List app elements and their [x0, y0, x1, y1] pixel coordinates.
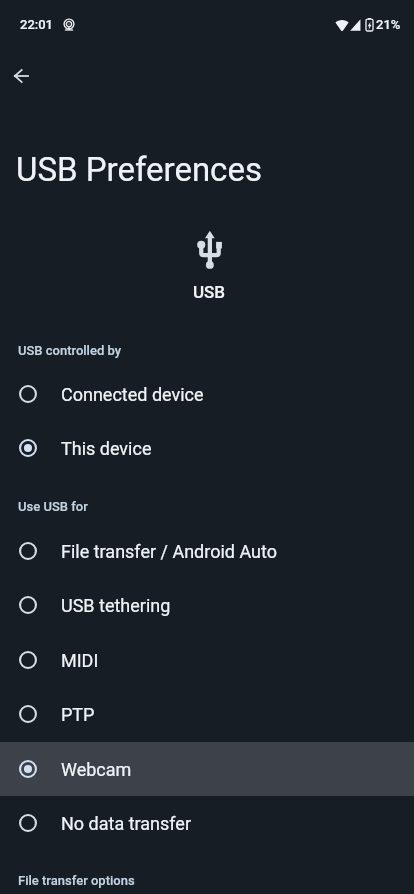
staticText: MIDI	[61, 650, 99, 671]
button[interactable]: USB tethering	[0, 578, 414, 632]
button[interactable]: MIDI	[0, 633, 414, 687]
staticText: Connected device	[61, 384, 204, 405]
staticText: File transfer options	[18, 873, 135, 888]
button[interactable]: No data transfer	[0, 796, 414, 850]
staticText: USB controlled by	[18, 343, 122, 358]
button[interactable]: Navigate up	[0, 55, 42, 97]
staticText: 21%	[376, 17, 401, 32]
staticText: PTP	[61, 704, 95, 725]
button[interactable]: This device	[0, 421, 414, 475]
staticText: USB	[193, 282, 226, 302]
staticText: Webcam	[61, 759, 132, 780]
staticText: USB Preferences	[16, 150, 262, 189]
button[interactable]: Webcam	[0, 742, 414, 796]
staticText: No data transfer	[61, 813, 192, 834]
staticText: 22:01	[20, 17, 54, 32]
staticText: USB tethering	[61, 595, 171, 616]
staticText: Use USB for	[18, 499, 88, 514]
staticText: This device	[61, 438, 152, 459]
button[interactable]: File transfer / Android Auto	[0, 524, 414, 578]
button[interactable]: Connected device	[0, 367, 414, 421]
staticText: File transfer / Android Auto	[61, 541, 277, 562]
button[interactable]: PTP	[0, 687, 414, 741]
